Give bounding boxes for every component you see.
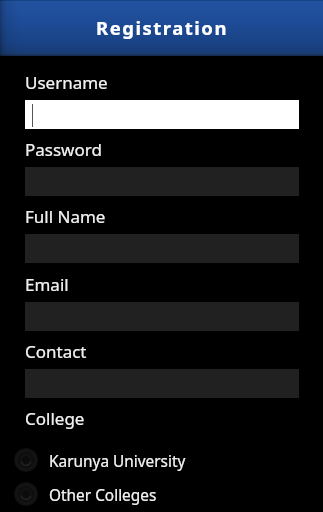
- staticText: Contact: [25, 340, 87, 363]
- staticText: Username: [25, 71, 108, 94]
- staticText: Other Colleges: [49, 485, 157, 506]
- staticText: Email: [25, 273, 69, 296]
- button[interactable]: Username: [25, 100, 299, 129]
- staticText: College: [25, 407, 85, 430]
- button[interactable]: Other Colleges: [13, 479, 303, 511]
- staticText: Full Name: [25, 205, 106, 228]
- staticText: Karunya University: [49, 451, 186, 472]
- staticText: Registration: [96, 15, 228, 40]
- button[interactable]: Karunya University: [13, 445, 303, 477]
- staticText: Password: [25, 138, 102, 161]
